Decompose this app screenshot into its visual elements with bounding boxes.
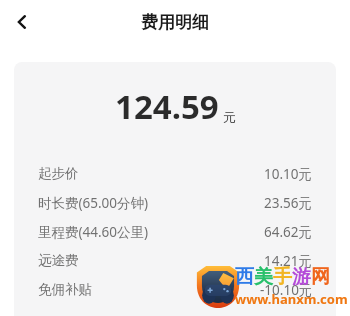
staticText: 时长费(65.00分钟) bbox=[38, 194, 149, 212]
button[interactable]: 远途费 bbox=[14, 246, 336, 275]
staticText: www.hanxm.com bbox=[235, 290, 348, 308]
button[interactable]: Back bbox=[5, 5, 39, 39]
button[interactable]: 起步价 bbox=[14, 159, 336, 188]
staticText: 10.10元 bbox=[264, 165, 313, 183]
button[interactable]: 免佣补贴 bbox=[14, 275, 336, 304]
staticText: 元 bbox=[223, 109, 236, 125]
staticText: 西美手游网 bbox=[235, 265, 330, 289]
staticText: 64.62元 bbox=[264, 223, 313, 241]
staticText: 23.56元 bbox=[264, 194, 313, 212]
button[interactable]: 里程费(44.60公里) bbox=[14, 217, 336, 246]
button[interactable]: 时长费(65.00分钟) bbox=[14, 188, 336, 217]
staticText: 124.59 bbox=[115, 84, 219, 129]
staticText: -10.10元 bbox=[260, 281, 313, 299]
staticText: 起步价 bbox=[38, 165, 79, 182]
staticText: 里程费(44.60公里) bbox=[38, 223, 149, 241]
staticText: 远途费 bbox=[38, 252, 79, 269]
staticText: 费用明细 bbox=[141, 12, 209, 33]
staticText: 免佣补贴 bbox=[38, 281, 92, 298]
staticText: 14.21元 bbox=[264, 252, 313, 270]
